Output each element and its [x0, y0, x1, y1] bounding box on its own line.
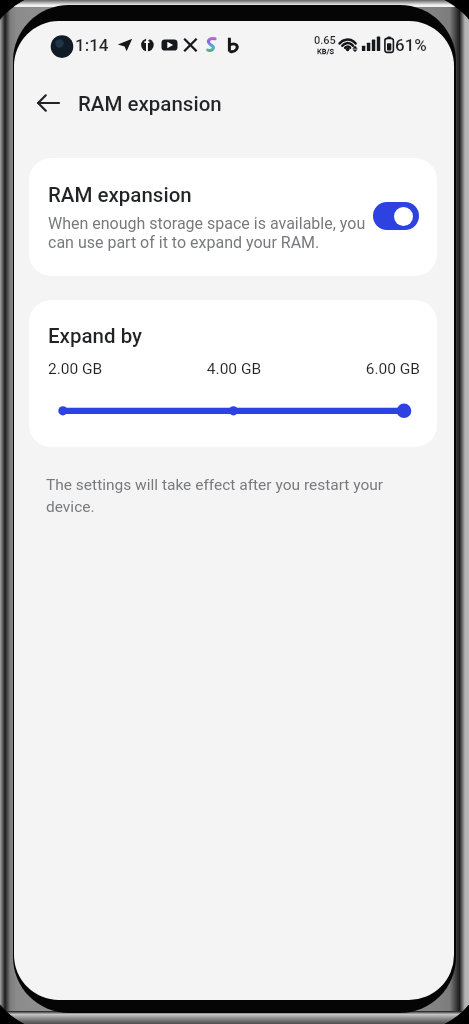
button[interactable]: Expand by amount slider: [49, 396, 417, 426]
staticText: 1:14: [75, 35, 109, 55]
staticText: RAM expansion: [78, 92, 222, 116]
staticText: When enough storage space is available, …: [48, 214, 368, 252]
button[interactable]: RAM expansion: [29, 158, 437, 276]
button[interactable]: Back: [26, 81, 70, 125]
staticText: 61%: [395, 35, 427, 55]
button[interactable]: RAM expansion toggle: [373, 202, 419, 230]
staticText: 2.00 GB: [48, 360, 172, 378]
staticText: 0.65: [314, 34, 336, 47]
staticText: 4.00 GB: [172, 360, 296, 378]
staticText: The settings will take effect after you …: [46, 476, 394, 515]
staticText: RAM expansion: [48, 183, 192, 207]
staticText: Expand by: [48, 324, 143, 348]
staticText: 6.00 GB: [296, 360, 420, 378]
staticText: KB/S: [317, 47, 334, 56]
